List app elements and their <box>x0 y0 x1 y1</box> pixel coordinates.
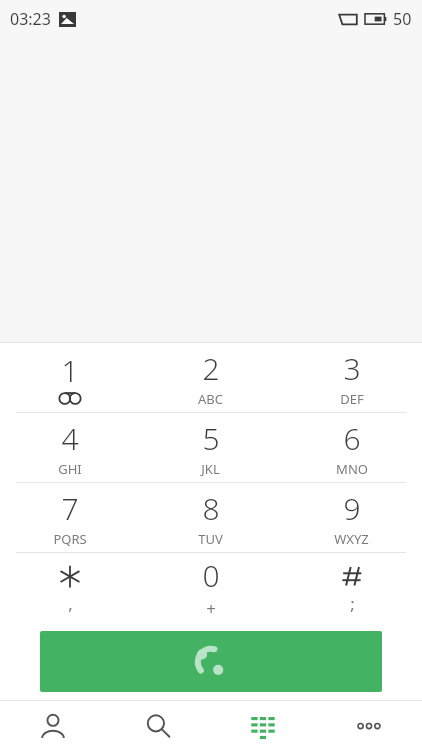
button[interactable]: 6 <box>281 413 422 482</box>
staticText: TUV <box>198 530 223 548</box>
staticText: 0 <box>202 555 220 596</box>
button[interactable]: 1 <box>0 343 140 412</box>
staticText: JKL <box>201 460 220 478</box>
staticText: 3 <box>343 348 361 389</box>
button[interactable]: Search <box>105 701 210 750</box>
button[interactable]: 9 <box>281 483 422 552</box>
staticText: PQRS <box>53 530 87 548</box>
staticText: + <box>206 597 216 620</box>
staticText: , <box>68 592 73 615</box>
button[interactable]: Call <box>40 631 382 692</box>
button[interactable]: Contacts <box>0 701 105 750</box>
button[interactable]: 5 <box>140 413 281 482</box>
button[interactable]: 3 <box>281 343 422 412</box>
staticText: 9 <box>343 488 361 529</box>
button[interactable]: 8 <box>140 483 281 552</box>
staticText: GHI <box>58 460 82 478</box>
staticText: WXYZ <box>334 530 369 548</box>
button[interactable]: More options <box>316 701 422 750</box>
staticText: 50 <box>393 8 412 30</box>
staticText: 8 <box>202 488 220 529</box>
staticText: MNO <box>336 460 368 478</box>
staticText: 5 <box>202 418 220 459</box>
staticText: 03:23 <box>10 8 51 30</box>
staticText: ABC <box>198 390 223 408</box>
button[interactable]: 4 <box>0 413 140 482</box>
staticText: DEF <box>340 390 364 408</box>
button[interactable]: 0 <box>140 553 281 622</box>
staticText: 1 <box>61 350 79 391</box>
staticText: 6 <box>343 418 361 459</box>
button[interactable]: ; <box>281 553 422 622</box>
button[interactable]: 7 <box>0 483 140 552</box>
button[interactable]: Dialpad <box>210 701 316 750</box>
staticText: ; <box>350 592 355 615</box>
button[interactable]: 2 <box>140 343 281 412</box>
button[interactable]: , <box>0 553 140 622</box>
staticText: 7 <box>61 488 79 529</box>
staticText: 4 <box>61 418 79 459</box>
staticText: 2 <box>202 348 220 389</box>
